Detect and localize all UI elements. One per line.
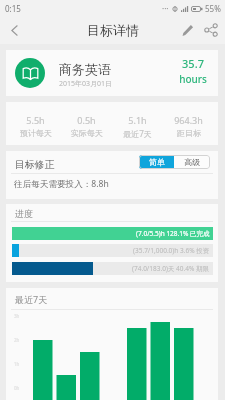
staticText: 2015年03月01日 [59, 79, 113, 89]
staticText: (7.0/5.5)h 128.1% 已完成 [136, 229, 210, 238]
staticText: ··· [162, 3, 169, 14]
staticText: 0h [14, 385, 20, 391]
staticText: hours [179, 72, 207, 86]
staticText: 3h [14, 313, 20, 319]
staticText: 2h [14, 337, 20, 343]
staticText: 往后每天需要投入：8.8h [14, 178, 109, 190]
staticText: 简单 [149, 157, 165, 167]
staticText: 最近7天 [123, 128, 152, 139]
staticText: 5.1h [128, 114, 147, 126]
staticText: 55% [205, 3, 221, 14]
staticText: 0:15 [5, 3, 21, 14]
button[interactable]: 高级 [174, 155, 210, 169]
staticText: 实际每天 [71, 128, 103, 138]
staticText: 商务英语 [59, 61, 111, 77]
button[interactable]: Back [0, 16, 28, 44]
staticText: 目标详情 [87, 22, 139, 38]
button[interactable]: 简单 [139, 155, 174, 169]
staticText: 1h [14, 361, 20, 367]
staticText: 5.5h [26, 114, 45, 126]
staticText: 进度 [15, 208, 33, 219]
staticText: (74.0/183.0)天 40.4% 期限 [132, 264, 210, 273]
staticText: 高级 [184, 157, 200, 167]
button[interactable]: Share [199, 18, 223, 42]
staticText: 0.5h [77, 114, 96, 126]
staticText: 目标修正 [15, 159, 55, 171]
staticText: 距目标 [177, 128, 201, 138]
staticText: 预计每天 [20, 128, 52, 138]
staticText: (35.7/1,000.0)h 3.6% 投资 [133, 246, 210, 255]
staticText: 964.3h [174, 114, 203, 126]
staticText: 最近7天 [15, 293, 48, 305]
staticText: 35.7 [182, 56, 204, 71]
button[interactable]: Edit [175, 18, 199, 42]
